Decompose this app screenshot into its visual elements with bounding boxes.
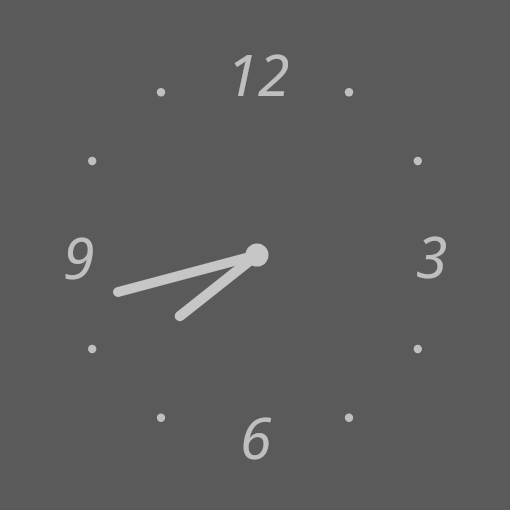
button[interactable]: Analog watch face bbox=[0, 0, 510, 510]
